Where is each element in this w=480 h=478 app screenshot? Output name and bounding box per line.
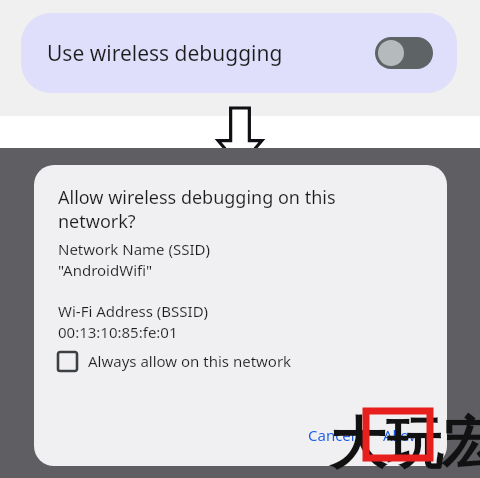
staticText: Allow bbox=[383, 425, 421, 445]
button[interactable]: Cancel bbox=[300, 420, 363, 450]
button[interactable]: Allow bbox=[373, 420, 431, 450]
button[interactable]: Use wireless debugging bbox=[21, 13, 457, 93]
button[interactable]: Always allow on this network bbox=[58, 351, 292, 371]
staticText: Use wireless debugging bbox=[47, 39, 283, 68]
staticText: Network Name (SSID) "AndroidWifi" bbox=[58, 239, 210, 281]
staticText: 大玩宏 bbox=[330, 409, 480, 478]
staticText: Wi-Fi Address (BSSID) 00:13:10:85:fe:01 bbox=[58, 301, 209, 343]
staticText: Allow wireless debugging on this network… bbox=[58, 185, 336, 233]
staticText: Always allow on this network bbox=[88, 351, 292, 371]
button[interactable]: Use wireless debugging toggle bbox=[375, 37, 433, 69]
staticText: Cancel bbox=[308, 425, 355, 445]
